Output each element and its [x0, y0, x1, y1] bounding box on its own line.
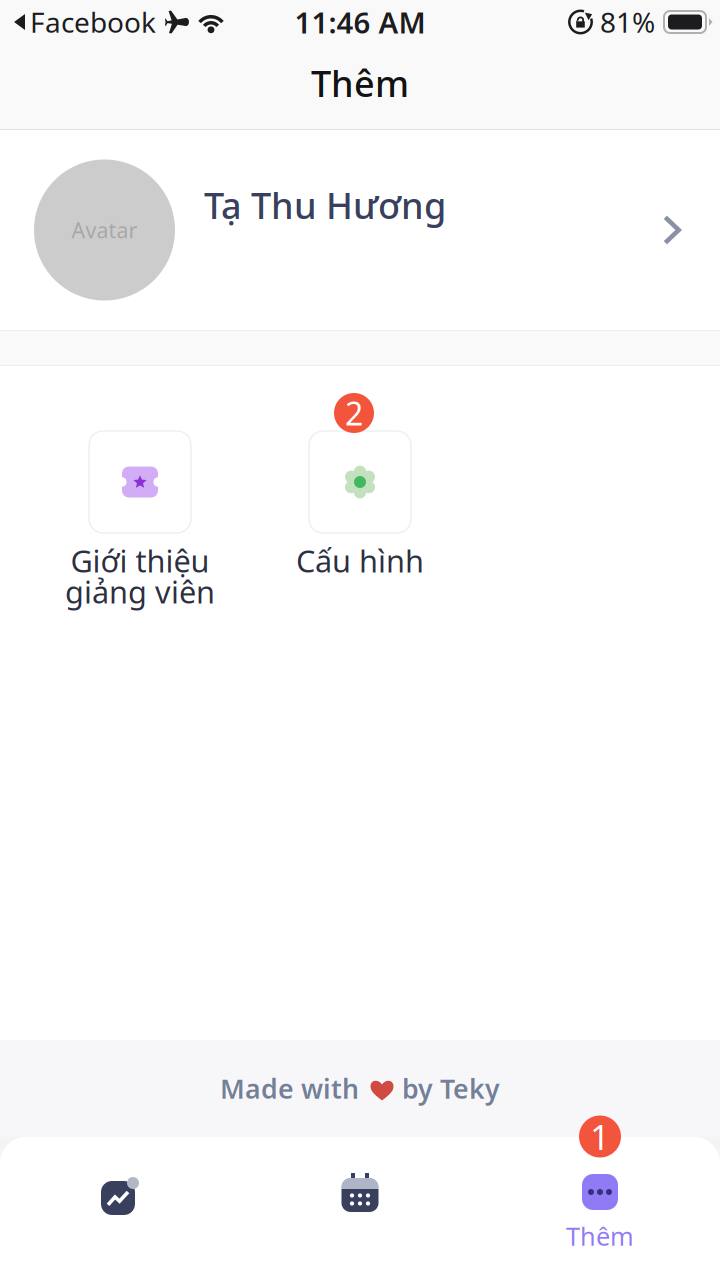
button[interactable]: Avatar [0, 130, 720, 330]
staticText: giảng viên [65, 571, 215, 612]
staticText: Giới thiệu [70, 540, 209, 581]
staticText: Thêm [311, 59, 409, 107]
staticText: Cấu hình [296, 540, 424, 581]
staticText: Made with [220, 1071, 359, 1106]
button[interactable]: Báo cáo [0, 1137, 240, 1280]
staticText: by Teky [402, 1071, 500, 1106]
button[interactable]: Thêm [480, 1137, 720, 1280]
staticText: Tạ Thu Hương [204, 181, 446, 229]
staticText: 11:46 AM [294, 2, 425, 41]
button[interactable]: Lịch [240, 1137, 480, 1280]
staticText: Avatar [71, 216, 137, 244]
staticText: Thêm [566, 1219, 634, 1253]
button[interactable]: Giới thiệu [40, 431, 240, 611]
staticText: 81% [600, 3, 655, 41]
staticText: 1 [590, 1113, 610, 1159]
button[interactable]: 2 [260, 431, 460, 611]
staticText: Facebook [30, 3, 156, 41]
staticText: 2 [345, 392, 363, 434]
